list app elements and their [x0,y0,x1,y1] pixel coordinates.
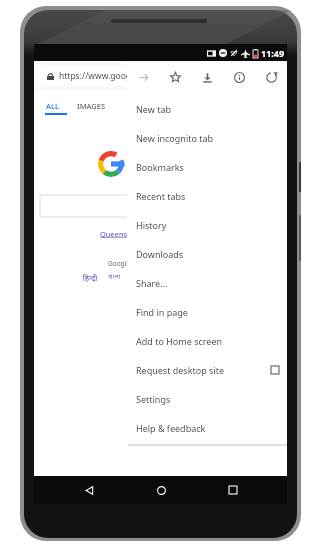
button[interactable]: Bookmark [159,62,191,92]
button[interactable]: Help & feedback [127,413,287,442]
button[interactable]: Share… [127,268,287,297]
button[interactable]: Back [79,480,99,500]
button[interactable]: ALL [44,101,61,111]
button[interactable]: Recents [223,480,243,500]
button[interactable]: Page info [223,62,255,92]
button[interactable]: History [127,210,287,239]
staticText: 11:49 [261,47,285,59]
button[interactable]: Downloads [127,239,287,268]
button[interactable]: Find in page [127,297,287,326]
staticText: Find in page [136,306,188,318]
staticText: New incognito tab [136,132,214,144]
button[interactable]: Download [191,62,223,92]
button[interactable]: Add to Home screen [127,326,287,355]
button[interactable]: Reload [255,62,287,92]
button[interactable]: తెలుగు [125,273,156,283]
staticText: Request desktop site [136,364,225,376]
button[interactable] [40,195,281,217]
staticText: History [136,219,167,231]
button[interactable]: Forward [127,62,159,92]
staticText: Settings [136,393,171,405]
button[interactable]: New incognito tab [127,123,287,152]
staticText: ALL [46,101,59,111]
staticText: New tab [136,103,171,115]
button[interactable]: বাংলা [103,273,125,281]
staticText: Recent tabs [136,190,186,202]
button[interactable]: हिन्दी [78,273,103,283]
button[interactable]: Recent tabs [127,181,287,210]
button[interactable]: Settings [127,384,287,413]
button[interactable]: https://www.google.co.in [40,66,281,86]
staticText: Share… [136,277,168,289]
button[interactable]: New tab [127,94,287,123]
staticText: Google offered in: [108,259,164,268]
staticText: Downloads [136,248,184,260]
button[interactable]: Queensland [100,229,143,239]
staticText: Help & feedback [136,422,206,434]
button[interactable]: Home [151,480,171,500]
button[interactable]: Request desktop site [127,355,287,384]
staticText: https://www.google.co.in [59,70,160,82]
staticText: Bookmarks [136,161,184,173]
button[interactable]: Bookmarks [127,152,287,181]
button[interactable]: IMAGES [77,101,106,111]
staticText: Add to Home screen [136,335,223,347]
